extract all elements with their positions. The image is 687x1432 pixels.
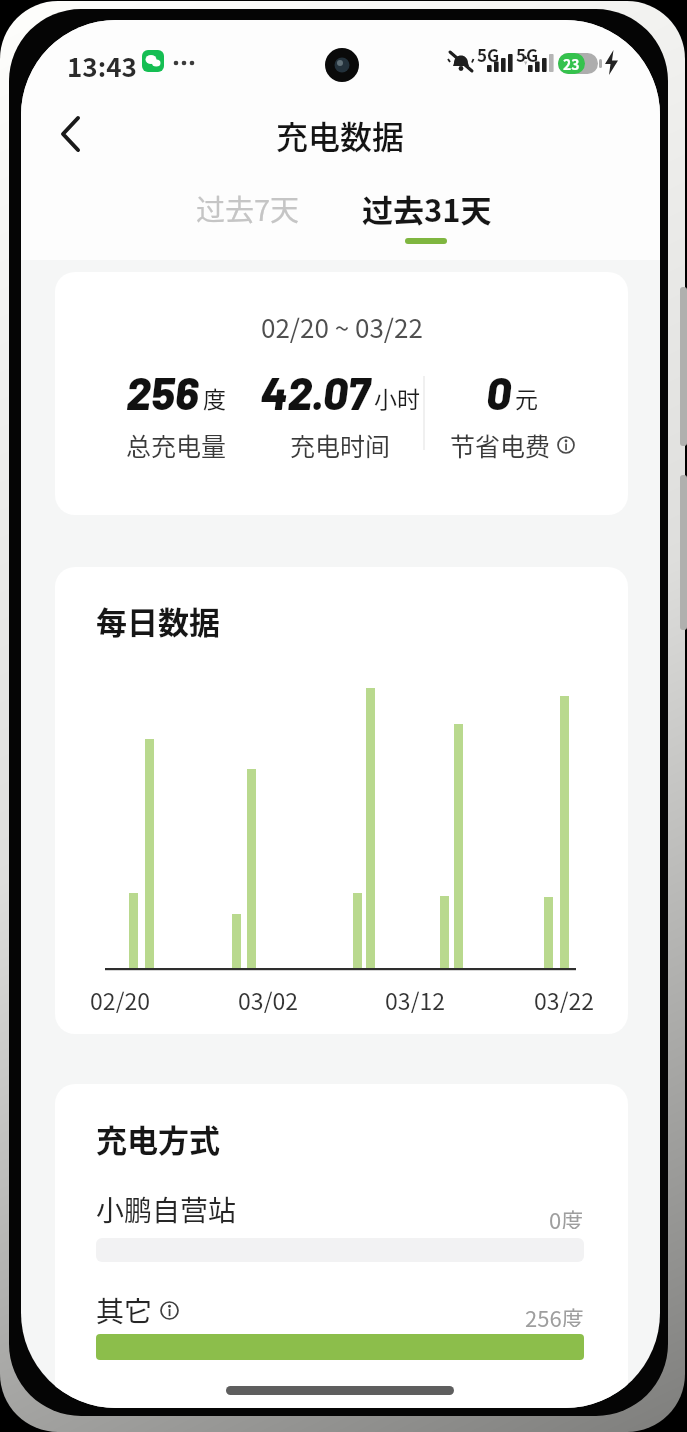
staticText: 充电数据 bbox=[276, 112, 405, 156]
staticText: 03/22 bbox=[534, 983, 595, 1013]
staticText: 5G bbox=[477, 42, 500, 67]
staticText: 5G bbox=[516, 42, 539, 67]
staticText: 13:43 bbox=[67, 47, 137, 85]
staticText: 其它 bbox=[96, 1290, 153, 1331]
button[interactable]: 过去31天 bbox=[337, 186, 517, 230]
staticText: 每日数据 bbox=[96, 598, 220, 643]
staticText: 0 bbox=[486, 365, 511, 419]
staticText: 03/12 bbox=[385, 983, 446, 1013]
staticText: 充电时间 bbox=[290, 427, 391, 463]
staticText: 256度 bbox=[525, 1301, 584, 1327]
button[interactable]: 过去7天 bbox=[158, 187, 338, 227]
button[interactable] bbox=[557, 436, 575, 454]
staticText: 小鹏自营站 bbox=[96, 1189, 237, 1230]
staticText: 小时 bbox=[374, 381, 420, 414]
button[interactable] bbox=[59, 115, 83, 153]
staticText: 度 bbox=[203, 381, 226, 414]
button[interactable] bbox=[160, 1301, 179, 1320]
staticText: 过去31天 bbox=[362, 186, 492, 230]
staticText: 42.07 bbox=[260, 365, 370, 419]
staticText: 02/20 bbox=[90, 983, 151, 1013]
staticText: 元 bbox=[515, 381, 538, 414]
staticText: 256 bbox=[126, 365, 199, 419]
staticText: 03/02 bbox=[238, 983, 299, 1013]
staticText: 总充电量 bbox=[126, 427, 227, 463]
staticText: 过去7天 bbox=[196, 187, 300, 227]
staticText: 02/20 ~ 03/22 bbox=[261, 308, 423, 346]
staticText: 23 bbox=[563, 54, 580, 74]
staticText: 充电方式 bbox=[96, 1116, 220, 1161]
staticText: 节省电费 bbox=[450, 427, 551, 463]
staticText: 0度 bbox=[549, 1203, 584, 1229]
